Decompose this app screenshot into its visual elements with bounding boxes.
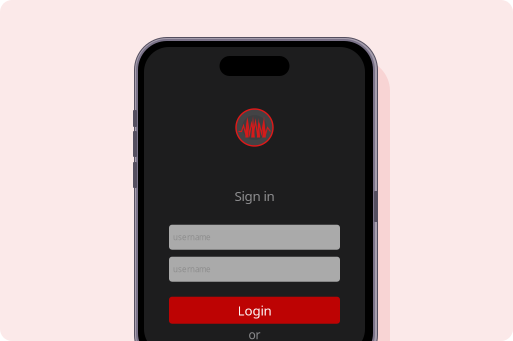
button[interactable]: Login xyxy=(169,297,340,324)
staticText: or xyxy=(248,327,260,341)
button[interactable]: Volume down xyxy=(0,0,4,26)
button[interactable]: Action button xyxy=(0,0,4,17)
staticText: Sign in xyxy=(234,187,274,205)
button[interactable]: Volume up xyxy=(0,0,4,26)
staticText: username xyxy=(173,264,211,274)
button[interactable]: username xyxy=(169,225,340,250)
staticText: username xyxy=(173,232,211,242)
button[interactable]: Side button xyxy=(0,0,4,31)
staticText: Login xyxy=(237,301,271,319)
button[interactable]: username xyxy=(169,257,340,282)
